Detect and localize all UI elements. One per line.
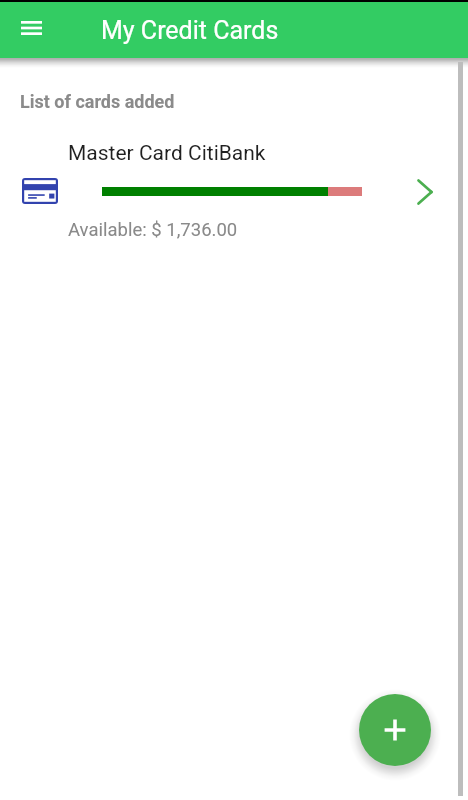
button[interactable]: View card details bbox=[405, 172, 445, 212]
staticText: Available: $ 1,736.00 bbox=[68, 219, 238, 241]
button[interactable]: Add a new card bbox=[359, 694, 431, 766]
staticText: My Credit Cards bbox=[101, 16, 279, 45]
staticText: List of cards added bbox=[20, 91, 175, 112]
button[interactable]: Master Card CitiBank bbox=[0, 130, 468, 214]
button[interactable]: Open navigation menu bbox=[9, 6, 53, 50]
staticText: Master Card CitiBank bbox=[68, 141, 266, 166]
